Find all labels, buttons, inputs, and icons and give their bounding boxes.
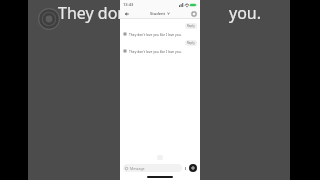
staticText: Reply	[187, 24, 195, 28]
button[interactable]: Send	[189, 164, 197, 172]
button[interactable]: They don't love you like I love you.	[123, 49, 197, 53]
staticText: They don't love you like I love you.	[129, 49, 182, 53]
button[interactable]: They don't love you like I love you.	[123, 32, 197, 36]
staticText: They don't love you like I love you.	[129, 32, 182, 36]
button[interactable]: Reply	[185, 40, 197, 46]
button[interactable]: Back	[123, 10, 130, 17]
button[interactable]: Message	[123, 164, 182, 172]
staticText: Student	[150, 11, 166, 16]
button[interactable]: Student	[148, 10, 172, 17]
staticText: They don	[58, 2, 128, 24]
staticText: 13:43	[123, 2, 134, 7]
staticText: Message	[130, 166, 145, 171]
button[interactable]: More options	[190, 10, 197, 17]
staticText: Reply	[187, 41, 195, 45]
button[interactable]: Attach	[184, 167, 187, 170]
button[interactable]: Reply	[185, 23, 197, 29]
staticText: you.	[229, 2, 262, 24]
